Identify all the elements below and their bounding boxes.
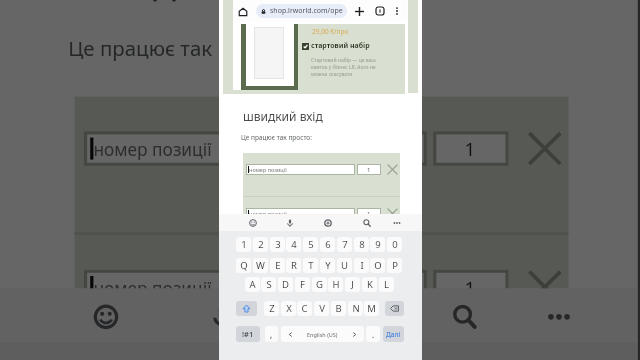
button[interactable]: Remove item bbox=[384, 161, 400, 177]
staticText: R bbox=[291, 259, 297, 272]
button[interactable]: C bbox=[297, 301, 312, 316]
button[interactable]: Emoji bbox=[246, 216, 260, 230]
button[interactable]: More bbox=[390, 216, 404, 230]
button[interactable]: G bbox=[312, 277, 327, 292]
button[interactable]: , bbox=[265, 326, 278, 342]
button[interactable]: Tabs bbox=[372, 3, 388, 19]
button[interactable]: U bbox=[337, 258, 352, 273]
button[interactable]: 1 bbox=[433, 270, 509, 289]
staticText: Y bbox=[325, 259, 331, 272]
button[interactable]: номер позиції bbox=[84, 131, 427, 166]
staticText: 3 bbox=[275, 238, 281, 251]
staticText: швидкий вхід bbox=[243, 108, 323, 124]
button[interactable]: Z bbox=[264, 301, 279, 316]
button[interactable]: More bbox=[537, 295, 581, 339]
button[interactable]: 1 bbox=[357, 164, 381, 175]
button[interactable]: 3 bbox=[270, 237, 285, 252]
button[interactable]: Voice input bbox=[200, 295, 244, 339]
button[interactable]: O bbox=[370, 258, 385, 273]
staticText: Z bbox=[269, 302, 275, 315]
staticText: 1 bbox=[367, 210, 371, 214]
button[interactable]: Voice input bbox=[283, 216, 297, 230]
button[interactable]: 6 bbox=[320, 237, 335, 252]
button[interactable]: W bbox=[253, 258, 268, 273]
staticText: 2 bbox=[258, 238, 264, 251]
button[interactable]: 0 bbox=[387, 237, 402, 252]
staticText: 5 bbox=[308, 238, 314, 251]
button[interactable]: номер позиції bbox=[84, 270, 427, 289]
staticText: J bbox=[351, 278, 354, 291]
staticText: L bbox=[384, 278, 389, 291]
staticText: 29,00 €/про bbox=[312, 27, 349, 36]
staticText: Q bbox=[240, 259, 248, 272]
button[interactable]: Home bbox=[235, 4, 251, 20]
button[interactable]: 4 bbox=[286, 237, 301, 252]
button[interactable]: 8 bbox=[354, 237, 369, 252]
button[interactable]: 2 bbox=[253, 237, 268, 252]
button[interactable]: D bbox=[278, 277, 293, 292]
staticText: номер позиції bbox=[93, 137, 213, 159]
button[interactable]: Y bbox=[320, 258, 335, 273]
button[interactable]: T bbox=[303, 258, 318, 273]
button[interactable]: H bbox=[328, 277, 343, 292]
button[interactable]: 7 bbox=[337, 237, 352, 252]
button[interactable]: 5 bbox=[303, 237, 318, 252]
button[interactable]: 1 bbox=[236, 237, 251, 252]
button[interactable]: номер позиції bbox=[246, 208, 355, 214]
staticText: 1 bbox=[367, 166, 371, 174]
button[interactable]: I bbox=[354, 258, 369, 273]
staticText: English (US) bbox=[307, 331, 338, 338]
button[interactable]: More options bbox=[389, 3, 405, 19]
button[interactable]: V bbox=[314, 301, 329, 316]
button[interactable]: X bbox=[281, 301, 296, 316]
button[interactable]: L bbox=[379, 277, 394, 292]
staticText: H bbox=[332, 278, 340, 291]
button[interactable]: English (US) bbox=[281, 326, 364, 342]
button[interactable]: F bbox=[295, 277, 310, 292]
button[interactable]: Q bbox=[236, 258, 251, 273]
staticText: N bbox=[352, 302, 360, 315]
button[interactable]: shop.lrworld.com/ope bbox=[256, 4, 347, 18]
button[interactable]: Settings bbox=[320, 295, 364, 339]
button[interactable]: Search bbox=[443, 295, 487, 339]
button[interactable]: Shift bbox=[236, 301, 257, 316]
button[interactable]: M bbox=[364, 301, 379, 316]
button[interactable]: Remove item bbox=[518, 260, 568, 288]
staticText: A bbox=[249, 278, 256, 291]
button[interactable]: B bbox=[331, 301, 346, 316]
button[interactable]: A bbox=[245, 277, 260, 292]
button[interactable]: E bbox=[270, 258, 285, 273]
staticText: V bbox=[319, 302, 325, 315]
button[interactable]: P bbox=[387, 258, 402, 273]
button[interactable]: New tab bbox=[351, 3, 367, 19]
button[interactable]: N bbox=[348, 301, 363, 316]
button[interactable]: !#1 bbox=[236, 326, 260, 342]
button[interactable]: . bbox=[366, 326, 380, 342]
staticText: shop.lrworld.com/ope bbox=[270, 6, 343, 16]
button[interactable]: Emoji bbox=[84, 295, 128, 339]
staticText: U bbox=[341, 259, 348, 272]
staticText: O bbox=[374, 259, 382, 272]
staticText: F bbox=[300, 278, 305, 291]
button[interactable]: номер позиції bbox=[246, 164, 355, 175]
button[interactable]: 1 bbox=[433, 131, 509, 166]
button[interactable]: Backspace bbox=[385, 301, 404, 316]
staticText: X bbox=[286, 302, 292, 315]
button[interactable]: R bbox=[286, 258, 301, 273]
button[interactable]: Remove item bbox=[518, 122, 568, 172]
staticText: T bbox=[308, 259, 314, 272]
button[interactable]: Remove item bbox=[384, 205, 400, 214]
staticText: 0 bbox=[392, 238, 398, 251]
button[interactable]: 1 bbox=[357, 208, 381, 214]
button[interactable]: J bbox=[345, 277, 360, 292]
staticText: P bbox=[392, 259, 398, 272]
button[interactable]: S bbox=[261, 277, 276, 292]
button[interactable]: 9 bbox=[370, 237, 385, 252]
staticText: , bbox=[270, 329, 273, 340]
staticText: 1 bbox=[465, 276, 477, 289]
staticText: Стартовий набір — це ваш квиток у бізнес… bbox=[311, 57, 376, 78]
button[interactable]: Settings bbox=[321, 216, 335, 230]
button[interactable]: K bbox=[362, 277, 377, 292]
button[interactable]: Далі bbox=[383, 326, 404, 342]
button[interactable]: Search bbox=[360, 216, 374, 230]
